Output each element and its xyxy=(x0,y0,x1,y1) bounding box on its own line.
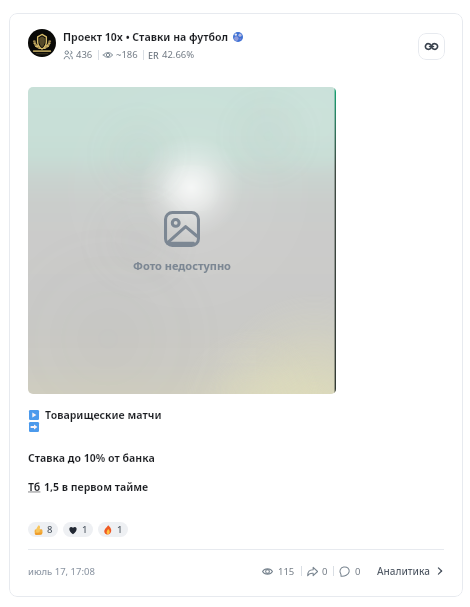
staticText: Проект 10x • Ставки на футбол xyxy=(63,30,229,44)
button[interactable]: 1 xyxy=(98,522,128,537)
staticText: Фото недоступно xyxy=(133,258,231,273)
button[interactable]: Фото недоступно xyxy=(28,87,336,394)
staticText: 436 xyxy=(76,48,93,61)
staticText: 115 xyxy=(278,565,295,578)
staticText: 8 xyxy=(47,523,53,536)
staticText: Аналитика xyxy=(377,564,431,578)
staticText: июль 17, 17:08 xyxy=(28,565,95,578)
staticText: ~186 xyxy=(116,48,138,61)
staticText: 0 xyxy=(355,565,361,578)
staticText: Ставка до 10% от банка xyxy=(28,451,155,465)
staticText: 0 xyxy=(322,565,328,578)
staticText: Товарищеские матчи xyxy=(45,408,162,422)
button[interactable]: 1 xyxy=(63,522,93,537)
button[interactable]: 8 xyxy=(28,522,58,537)
button[interactable]: Copy link xyxy=(418,33,445,60)
staticText: Тб xyxy=(28,480,44,494)
staticText: ER xyxy=(148,49,159,61)
staticText: 42.66% xyxy=(162,48,195,61)
button[interactable]: Аналитика xyxy=(377,564,444,578)
staticText: 1,5 в первом тайме xyxy=(44,480,149,494)
staticText: 1 xyxy=(82,523,88,536)
staticText: 1 xyxy=(117,523,123,536)
